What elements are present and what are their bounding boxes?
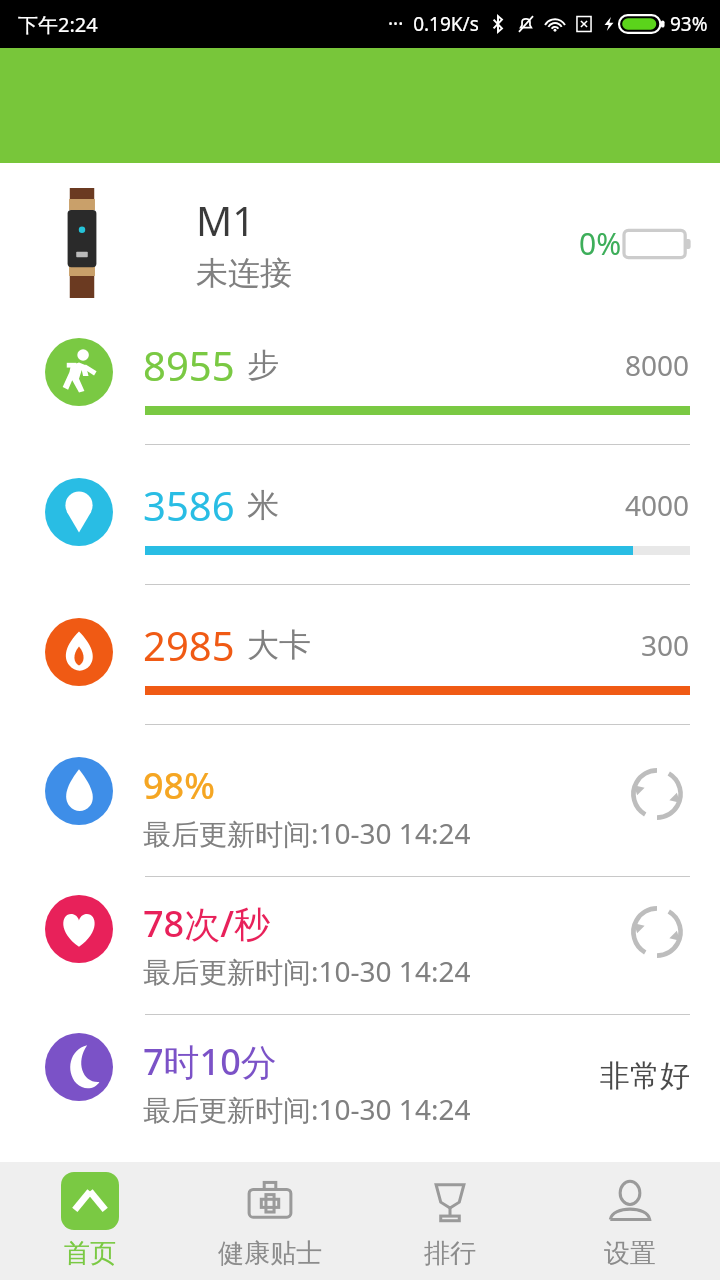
button[interactable]: M1 (0, 163, 720, 323)
staticText: 2985 (143, 618, 235, 672)
button[interactable]: 98% (0, 743, 720, 881)
button[interactable]: 8955 (0, 323, 720, 463)
staticText: 大卡 (247, 625, 311, 665)
staticText: 93% (670, 11, 708, 37)
staticText: 排行 (424, 1237, 476, 1270)
staticText: 300 (641, 626, 690, 664)
staticText: M1 (196, 193, 256, 247)
staticText: 3586 (143, 478, 235, 532)
staticText: 8000 (625, 346, 690, 384)
staticText: 8955 (143, 338, 235, 392)
button[interactable]: 2985 (0, 603, 720, 743)
staticText: 4000 (625, 486, 690, 524)
staticText: 健康贴士 (218, 1237, 322, 1270)
staticText: 米 (247, 485, 279, 525)
staticText: 最后更新时间:10-30 14:24 (143, 1090, 471, 1128)
staticText: 0% (579, 223, 622, 264)
staticText: 98% (143, 761, 215, 810)
staticText: 最后更新时间:10-30 14:24 (143, 952, 471, 990)
staticText: 设置 (604, 1237, 656, 1270)
staticText: 7时10分 (143, 1037, 277, 1086)
button[interactable]: Refresh (626, 901, 688, 963)
button[interactable]: 3586 (0, 463, 720, 603)
button[interactable]: 设置 (540, 1162, 720, 1280)
staticText: 步 (247, 345, 279, 385)
button[interactable]: 78次/秒 (0, 881, 720, 1019)
staticText: 未连接 (196, 253, 292, 293)
button[interactable]: Refresh (626, 763, 688, 825)
button[interactable]: 排行 (360, 1162, 540, 1280)
button[interactable]: 首页 (0, 1162, 180, 1280)
staticText: 首页 (64, 1237, 116, 1270)
button[interactable]: 7时10分 (0, 1019, 720, 1157)
staticText: 78次/秒 (143, 899, 271, 948)
staticText: ··· 0.19K/s (388, 11, 479, 37)
staticText: 下午2:24 (18, 11, 98, 38)
staticText: 非常好 (600, 1057, 690, 1095)
staticText: 最后更新时间:10-30 14:24 (143, 814, 471, 852)
button[interactable]: 健康贴士 (180, 1162, 360, 1280)
